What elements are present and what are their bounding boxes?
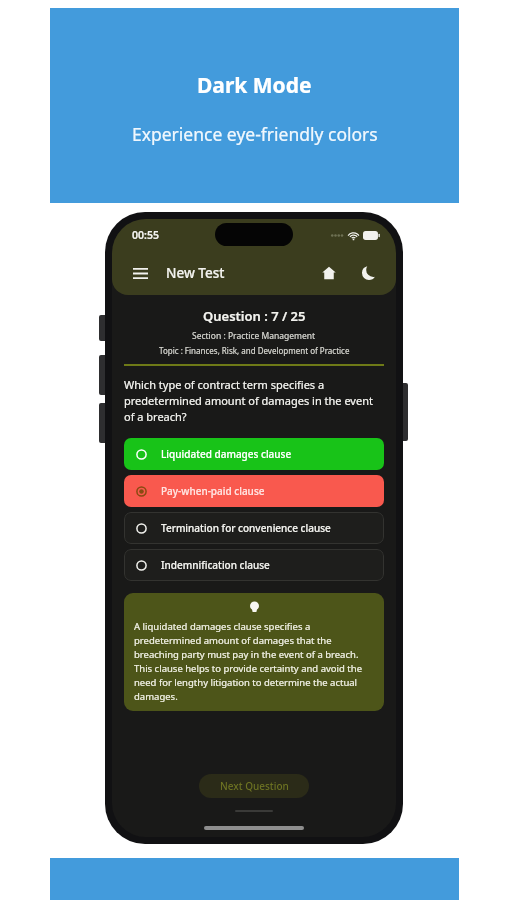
- staticText: 00:55: [132, 228, 159, 242]
- staticText: New Test: [166, 264, 225, 282]
- staticText: Next Question: [220, 779, 289, 793]
- staticText: Topic : Finances, Risk, and Development …: [159, 345, 350, 356]
- staticText: Pay-when-paid clause: [161, 484, 265, 498]
- staticText: Liquidated damages clause: [161, 447, 292, 461]
- staticText: Dark Mode: [197, 71, 312, 100]
- staticText: Question : 7 / 25: [203, 307, 306, 325]
- button[interactable]: Menu: [126, 259, 154, 287]
- button[interactable]: Pay-when-paid clause: [124, 475, 384, 507]
- staticText: Section : Practice Management: [192, 330, 316, 342]
- button[interactable]: Liquidated damages clause: [124, 438, 384, 470]
- staticText: Indemnification clause: [161, 558, 270, 572]
- button[interactable]: Home: [316, 260, 342, 286]
- button[interactable]: Termination for convenience clause: [124, 512, 384, 544]
- staticText: A liquidated damages clause specifies a …: [134, 620, 374, 703]
- staticText: Experience eye-friendly colors: [132, 122, 378, 146]
- button[interactable]: Toggle dark mode: [356, 260, 382, 286]
- staticText: Termination for convenience clause: [161, 521, 331, 535]
- button[interactable]: Next Question: [199, 774, 309, 798]
- staticText: Which type of contract term specifies a …: [124, 377, 384, 424]
- button[interactable]: Indemnification clause: [124, 549, 384, 581]
